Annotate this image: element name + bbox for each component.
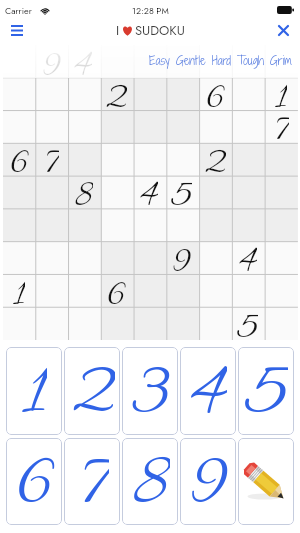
button[interactable]: 5 [231,307,264,340]
button[interactable] [264,241,297,274]
button[interactable]: 6 [198,77,231,109]
button[interactable]: 4 [231,241,264,274]
button[interactable] [264,307,297,340]
button[interactable] [231,175,264,208]
staticText: 6 [9,141,29,174]
button[interactable]: 1 [3,274,35,307]
button[interactable]: 4 [67,45,99,77]
button[interactable]: 5 [238,347,294,435]
button[interactable] [35,274,67,307]
button[interactable] [99,142,132,175]
button[interactable]: Tough [234,49,267,71]
button[interactable] [67,241,99,274]
button[interactable] [198,175,231,208]
button[interactable]: 1 [264,77,297,109]
button[interactable]: Hard [209,49,234,71]
button[interactable] [165,307,198,340]
button[interactable]: 5 [165,175,198,208]
button[interactable] [165,109,198,142]
button[interactable]: Grim [267,49,295,71]
button[interactable]: Menu [0,18,34,43]
button[interactable] [198,208,231,241]
button[interactable]: 9 [180,438,236,525]
button[interactable] [99,307,132,340]
button[interactable] [264,274,297,307]
button[interactable]: 9 [165,241,198,274]
button[interactable]: Pencil / notes [238,438,294,525]
button[interactable] [165,208,198,241]
button[interactable] [165,274,198,307]
button[interactable] [231,208,264,241]
button[interactable] [132,274,165,307]
button[interactable] [35,109,67,142]
button[interactable]: 9 [35,45,67,77]
button[interactable] [67,77,99,109]
button[interactable]: 2 [99,77,132,109]
button[interactable] [67,307,99,340]
button[interactable] [35,208,67,241]
button[interactable]: 7 [264,109,297,142]
button[interactable]: 6 [99,274,132,307]
button[interactable]: 7 [64,438,120,525]
button[interactable] [3,208,35,241]
button[interactable] [198,274,231,307]
button[interactable] [198,307,231,340]
button[interactable] [132,241,165,274]
button[interactable] [165,142,198,175]
button[interactable]: 4 [132,175,165,208]
button[interactable] [132,142,165,175]
button[interactable] [132,109,165,142]
button[interactable]: 8 [67,175,99,208]
button[interactable] [132,45,165,77]
button[interactable] [165,45,198,77]
button[interactable] [99,109,132,142]
button[interactable] [231,109,264,142]
button[interactable] [35,175,67,208]
button[interactable] [198,109,231,142]
button[interactable] [165,77,198,109]
button[interactable] [99,241,132,274]
button[interactable] [3,241,35,274]
button[interactable] [3,175,35,208]
button[interactable]: 2 [64,347,120,435]
button[interactable]: 4 [180,347,236,435]
button[interactable]: 6 [3,142,35,175]
button[interactable] [67,142,99,175]
button[interactable]: Easy [146,49,173,71]
button[interactable] [231,77,264,109]
button[interactable] [198,45,231,77]
button[interactable] [264,208,297,241]
button[interactable]: 3 [122,347,178,435]
button[interactable] [231,274,264,307]
staticText: 9 [172,240,191,273]
button[interactable]: 2 [198,142,231,175]
button[interactable] [198,241,231,274]
button[interactable] [132,307,165,340]
button[interactable] [3,109,35,142]
button[interactable] [264,45,297,77]
button[interactable] [99,208,132,241]
button[interactable]: 8 [122,438,178,525]
button[interactable]: Gentle [173,49,209,71]
button[interactable] [231,142,264,175]
button[interactable]: 6 [6,438,62,525]
button[interactable] [67,109,99,142]
button[interactable]: 7 [35,142,67,175]
button[interactable]: Close [266,18,300,43]
button[interactable] [35,77,67,109]
button[interactable] [132,208,165,241]
button[interactable] [35,307,67,340]
button[interactable] [35,241,67,274]
button[interactable] [132,77,165,109]
button[interactable] [99,175,132,208]
button[interactable] [67,274,99,307]
button[interactable]: 1 [6,347,62,435]
button[interactable] [3,307,35,340]
button[interactable] [231,45,264,77]
button[interactable] [264,175,297,208]
button[interactable] [264,142,297,175]
button[interactable] [67,208,99,241]
